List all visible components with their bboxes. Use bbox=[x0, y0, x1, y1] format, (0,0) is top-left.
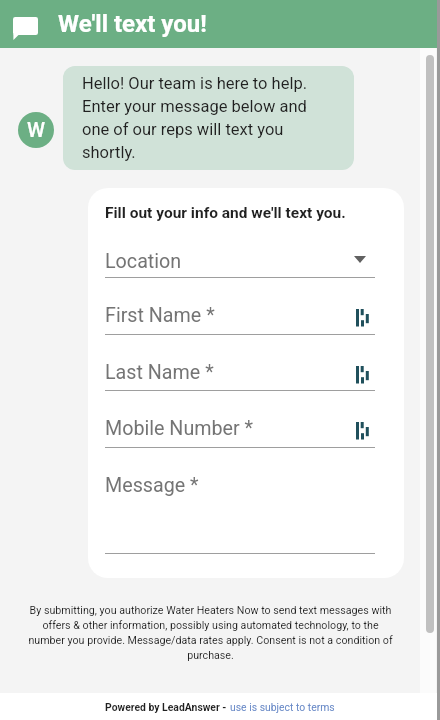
staticText: By submitting, you authorize Water Heate… bbox=[26, 604, 395, 661]
staticText: Fill out your info and we'll text you. bbox=[105, 204, 346, 222]
staticText: Mobile Number * bbox=[105, 417, 254, 440]
staticText: Last Name * bbox=[105, 361, 214, 384]
staticText: W bbox=[27, 118, 46, 142]
other: Autofill bbox=[356, 422, 369, 440]
other: Autofill bbox=[356, 366, 369, 384]
other: Open list bbox=[354, 256, 366, 263]
button[interactable]: W bbox=[18, 112, 54, 148]
button[interactable]: Chat bbox=[0, 0, 440, 48]
staticText: Message * bbox=[105, 474, 199, 497]
staticText: We'll text you! bbox=[58, 10, 207, 38]
staticText: Location bbox=[105, 250, 182, 273]
other: Autofill bbox=[356, 309, 369, 327]
staticText: First Name * bbox=[105, 304, 215, 327]
staticText: use is subject to terms bbox=[230, 701, 335, 713]
staticText: Powered by LeadAnswer - bbox=[105, 701, 230, 713]
other: Chat bbox=[13, 17, 38, 40]
button[interactable]: Powered by LeadAnswer - bbox=[105, 701, 335, 713]
staticText: Hello! Our team is here to help. Enter y… bbox=[82, 74, 317, 162]
